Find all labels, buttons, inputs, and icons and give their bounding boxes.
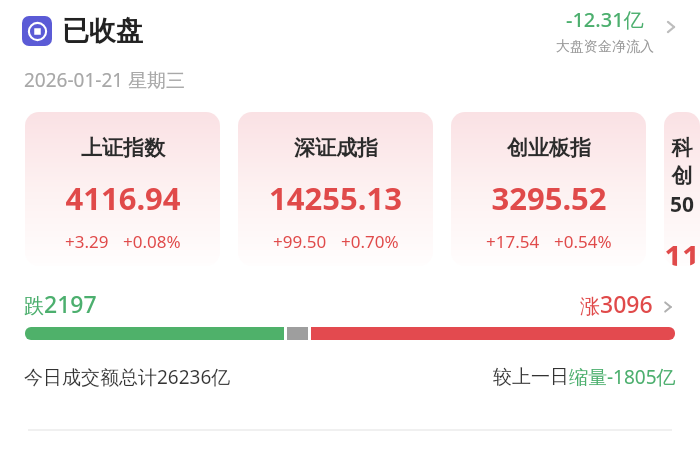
staticText: +0.54% — [554, 230, 612, 253]
staticText: +99.50 — [273, 230, 327, 253]
button[interactable]: Market status — [22, 16, 52, 46]
button[interactable]: 科创50 — [664, 112, 700, 266]
staticText: +3.29 — [65, 230, 109, 253]
button[interactable]: 涨跌家数详情 — [580, 288, 678, 319]
staticText: 缩量-1805亿 — [569, 364, 676, 390]
staticText: 4116.94 — [65, 177, 181, 219]
staticText: 创业板指 — [507, 135, 591, 161]
button[interactable]: 今日成交额总计26236亿 — [24, 364, 231, 390]
staticText: 跌 — [24, 294, 44, 319]
button[interactable]: 跌 — [24, 288, 97, 319]
staticText: 较上一日 — [493, 365, 569, 389]
staticText: 已收盘 — [62, 14, 143, 48]
button[interactable]: 较上一日 — [493, 364, 676, 390]
staticText: -12.31亿 — [566, 6, 644, 33]
button[interactable]: 上证指数 — [25, 112, 220, 266]
button[interactable]: 创业板指 — [451, 112, 646, 266]
staticText: 科创50 — [664, 135, 700, 219]
staticText: 14255.13 — [269, 177, 402, 219]
staticText: 2026-01-21 星期三 — [24, 67, 186, 93]
staticText: 上证指数 — [81, 135, 165, 161]
button[interactable]: 深证成指 — [238, 112, 433, 266]
staticText: 3295.52 — [491, 177, 607, 219]
button[interactable] — [25, 327, 675, 340]
staticText: 大盘资金净流入 — [556, 38, 654, 56]
staticText: 深证成指 — [294, 135, 378, 161]
button[interactable]: 大盘资金净流入详情 — [550, 6, 684, 56]
staticText: 2197 — [44, 288, 97, 319]
staticText: +0.70% — [341, 230, 399, 253]
staticText: +17.54 — [486, 230, 540, 253]
staticText: 1180.22 — [664, 235, 700, 266]
staticText: +0.08% — [123, 230, 181, 253]
staticText: 3096 — [600, 288, 653, 319]
staticText: 涨 — [580, 294, 600, 319]
